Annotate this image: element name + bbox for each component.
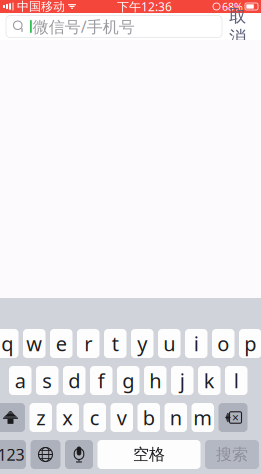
button[interactable]: r	[77, 329, 99, 358]
staticText: v	[117, 404, 127, 431]
staticText: m	[193, 404, 212, 431]
staticText: d	[68, 367, 80, 394]
button[interactable]: g	[117, 366, 139, 395]
staticText: e	[56, 330, 67, 357]
staticText: o	[217, 330, 229, 357]
button[interactable]: k	[198, 366, 220, 395]
staticText: 取消	[229, 5, 246, 48]
button[interactable]: e	[50, 329, 72, 358]
button[interactable]: u	[158, 329, 180, 358]
staticText: k	[204, 367, 215, 394]
button[interactable]: s	[36, 366, 58, 395]
staticText: c	[90, 404, 100, 431]
staticText: g	[122, 367, 134, 394]
button[interactable]: c	[83, 403, 106, 432]
button[interactable]: q	[0, 329, 18, 358]
button[interactable]: x	[56, 403, 79, 432]
staticText: l	[234, 367, 239, 394]
button[interactable]: 空格	[97, 440, 200, 469]
staticText: p	[244, 330, 256, 357]
staticText: 中国移动	[17, 0, 65, 14]
staticText: r	[84, 330, 92, 357]
staticText: x	[62, 404, 73, 431]
button[interactable]: Shift	[0, 403, 25, 432]
button[interactable]: v	[110, 403, 133, 432]
staticText: w	[26, 330, 42, 357]
button[interactable]: y	[131, 329, 153, 358]
staticText: j	[180, 367, 185, 394]
staticText: 搜索	[216, 445, 248, 464]
button[interactable]: Delete	[218, 403, 247, 432]
button[interactable]: 123	[0, 440, 26, 469]
button[interactable]: Next keyboard	[30, 440, 60, 469]
staticText: b	[143, 404, 155, 431]
staticText: i	[194, 330, 199, 357]
button[interactable]: h	[144, 366, 166, 395]
button[interactable]: f	[90, 366, 112, 395]
button[interactable]: Dictation	[65, 440, 93, 469]
button[interactable]: d	[63, 366, 85, 395]
staticText: 下午12:36	[117, 0, 172, 14]
button[interactable]: o	[212, 329, 234, 358]
button[interactable]: j	[171, 366, 193, 395]
staticText: z	[36, 404, 45, 431]
staticText: h	[149, 367, 161, 394]
button[interactable]: 取消	[222, 15, 261, 37]
button[interactable]: n	[164, 403, 187, 432]
button[interactable]: p	[239, 329, 261, 358]
staticText: 微信号/手机号	[33, 16, 135, 37]
staticText: y	[137, 330, 147, 357]
button[interactable]: l	[225, 366, 247, 395]
staticText: s	[42, 367, 52, 394]
button[interactable]: b	[137, 403, 160, 432]
button[interactable]: a	[9, 366, 31, 395]
staticText: u	[163, 330, 175, 357]
button[interactable]: w	[23, 329, 45, 358]
staticText: 68%	[222, 0, 243, 14]
button[interactable]: t	[104, 329, 126, 358]
staticText: a	[15, 367, 26, 394]
button[interactable]: i	[185, 329, 207, 358]
staticText: t	[112, 330, 119, 357]
staticText: f	[98, 367, 105, 394]
staticText: 空格	[133, 445, 165, 464]
staticText: ×	[232, 409, 239, 425]
staticText: n	[170, 404, 182, 431]
button[interactable]: z	[29, 403, 52, 432]
staticText: 123	[0, 444, 24, 465]
button[interactable]: m	[191, 403, 214, 432]
button[interactable]: 搜索	[205, 440, 259, 469]
staticText: q	[1, 330, 13, 357]
